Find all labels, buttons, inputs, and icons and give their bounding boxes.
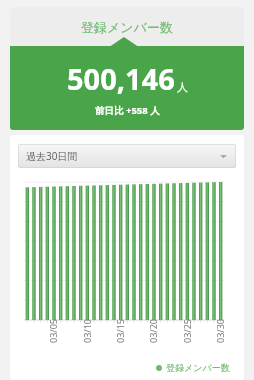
staticText: 登録メンバー数	[166, 362, 230, 373]
staticText: 過去30日間	[26, 149, 78, 163]
staticText: 03/05	[47, 319, 59, 343]
staticText: 人	[177, 80, 188, 94]
staticText: 03/10	[81, 319, 93, 343]
staticText: 03/20	[147, 319, 159, 343]
staticText: 03/25	[181, 319, 193, 343]
staticText: 登録メンバー数	[81, 19, 173, 35]
other: Open period selector	[220, 153, 227, 160]
staticText: 03/15	[114, 319, 126, 343]
staticText: 前日比 +558 人	[95, 104, 160, 117]
staticText: 03/30	[214, 319, 226, 343]
staticText: 500,146	[67, 59, 175, 98]
button[interactable]: 過去30日間	[18, 144, 236, 168]
button[interactable]: 登録メンバー数	[10, 7, 244, 130]
